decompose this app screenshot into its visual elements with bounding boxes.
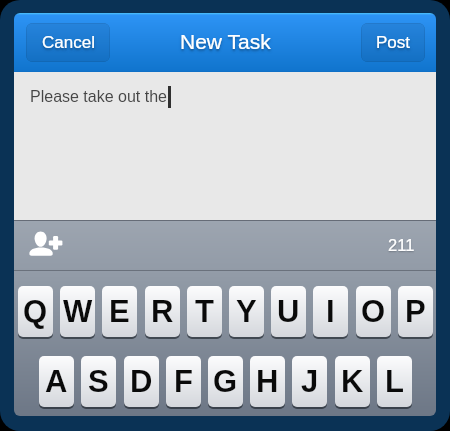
staticText: New Task [180,30,271,53]
staticText: Post [376,33,411,52]
staticText: J [301,364,319,399]
button[interactable]: G [208,356,243,407]
button[interactable]: U [271,286,306,337]
staticText: O [361,294,386,329]
button[interactable]: E [102,286,137,337]
staticText: P [405,294,426,329]
staticText: R [151,294,174,329]
button[interactable]: H [250,356,285,407]
staticText: Cancel [42,33,95,52]
button[interactable]: T [187,286,222,337]
staticText: F [174,364,193,399]
button[interactable]: Y [229,286,264,337]
staticText: I [326,294,335,329]
staticText: K [341,364,364,399]
button[interactable]: F [166,356,201,407]
staticText: Please take out the [30,88,167,106]
staticText: W [63,294,93,329]
button[interactable]: O [356,286,391,337]
button[interactable]: Q [18,286,53,337]
staticText: T [195,294,214,329]
button[interactable]: R [145,286,180,337]
staticText: H [256,364,279,399]
button[interactable]: P [398,286,433,337]
staticText: Q [23,294,48,329]
staticText: 211 [388,236,415,254]
staticText: S [88,364,109,399]
button[interactable]: D [124,356,159,407]
button[interactable]: I [313,286,348,337]
staticText: G [213,364,238,399]
button[interactable]: A [39,356,74,407]
button[interactable]: Post [361,23,425,62]
button[interactable]: W [60,286,95,337]
staticText: U [277,294,300,329]
button[interactable]: K [335,356,370,407]
staticText: L [385,364,404,399]
button[interactable]: S [81,356,116,407]
button[interactable]: L [377,356,412,407]
staticText: A [45,364,68,399]
staticText: E [109,294,130,329]
button[interactable]: J [292,356,327,407]
staticText: D [130,364,153,399]
staticText: Y [236,294,257,329]
button[interactable]: Cancel [26,23,110,62]
button[interactable]: Add person [22,223,78,265]
